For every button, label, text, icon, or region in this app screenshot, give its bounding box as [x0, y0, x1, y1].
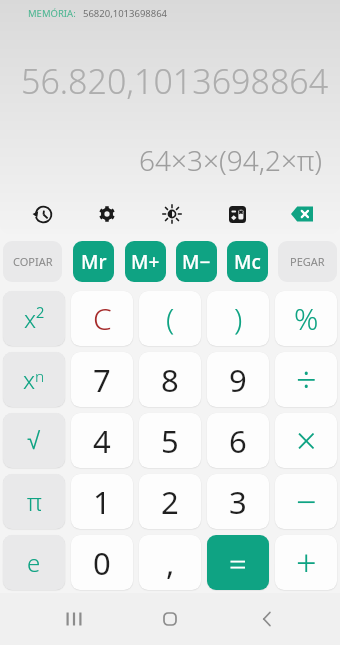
staticText: 0: [93, 542, 111, 584]
button[interactable]: Recent apps: [51, 596, 97, 642]
staticText: M−: [182, 249, 211, 275]
button[interactable]: History: [26, 197, 60, 231]
button[interactable]: 1: [71, 474, 133, 529]
button[interactable]: xⁿ: [3, 352, 65, 407]
button[interactable]: 7: [71, 352, 133, 407]
button[interactable]: 4: [71, 413, 133, 468]
button[interactable]: Brightness: [155, 197, 189, 231]
button[interactable]: 3: [207, 474, 269, 529]
staticText: 3: [229, 481, 247, 523]
staticText: 64×3×(94,2×π): [0, 141, 322, 179]
staticText: 5: [161, 420, 179, 462]
button[interactable]: C: [71, 291, 133, 346]
button[interactable]: ×: [275, 413, 337, 468]
button[interactable]: π: [3, 474, 65, 529]
button[interactable]: +: [275, 535, 337, 590]
button[interactable]: −: [275, 474, 337, 529]
button[interactable]: Mr: [73, 241, 114, 282]
staticText: 6: [229, 420, 247, 462]
button[interactable]: Mc: [227, 241, 268, 282]
staticText: Mr: [81, 249, 107, 275]
button[interactable]: Home: [147, 596, 193, 642]
button[interactable]: =: [207, 535, 269, 590]
button[interactable]: 9: [207, 352, 269, 407]
staticText: 2: [161, 481, 179, 523]
button[interactable]: Backspace: [285, 197, 319, 231]
staticText: 56820,1013698864: [83, 7, 168, 20]
button[interactable]: x²: [3, 291, 65, 346]
staticText: e: [27, 546, 41, 579]
button[interactable]: 6: [207, 413, 269, 468]
button[interactable]: M+: [125, 241, 166, 282]
button[interactable]: M−: [176, 241, 217, 282]
staticText: −: [296, 477, 317, 526]
staticText: ×: [296, 416, 317, 465]
staticText: M+: [131, 249, 160, 275]
staticText: 4: [93, 420, 111, 462]
button[interactable]: ): [207, 291, 269, 346]
staticText: π: [27, 485, 42, 518]
button[interactable]: Scientific mode: [220, 197, 254, 231]
staticText: Mc: [234, 249, 261, 275]
staticText: C: [93, 298, 112, 339]
staticText: ): [234, 298, 243, 339]
staticText: xⁿ: [23, 363, 45, 396]
staticText: 7: [93, 359, 111, 401]
staticText: 9: [229, 359, 247, 401]
button[interactable]: %: [275, 291, 337, 346]
staticText: ÷: [296, 355, 317, 404]
button[interactable]: COPIAR: [3, 241, 62, 282]
staticText: (: [166, 298, 175, 339]
staticText: 1: [93, 481, 111, 523]
staticText: √: [27, 427, 41, 454]
button[interactable]: e: [3, 535, 65, 590]
button[interactable]: 0: [71, 535, 133, 590]
button[interactable]: Settings: [90, 197, 124, 231]
staticText: +: [296, 538, 317, 587]
staticText: MEMÓRIA:: [28, 7, 76, 20]
button[interactable]: ,: [139, 535, 201, 590]
staticText: x²: [24, 302, 45, 335]
staticText: COPIAR: [13, 254, 53, 269]
button[interactable]: PEGAR: [278, 241, 337, 282]
staticText: ,: [166, 542, 175, 584]
button[interactable]: 5: [139, 413, 201, 468]
staticText: PEGAR: [290, 254, 325, 269]
button[interactable]: √: [3, 413, 65, 468]
button[interactable]: Back: [244, 596, 290, 642]
staticText: 8: [161, 359, 179, 401]
staticText: =: [229, 542, 247, 584]
staticText: 56.820,1013698864: [21, 58, 340, 104]
button[interactable]: ÷: [275, 352, 337, 407]
button[interactable]: (: [139, 291, 201, 346]
button[interactable]: 8: [139, 352, 201, 407]
staticText: %: [294, 298, 319, 339]
button[interactable]: 2: [139, 474, 201, 529]
